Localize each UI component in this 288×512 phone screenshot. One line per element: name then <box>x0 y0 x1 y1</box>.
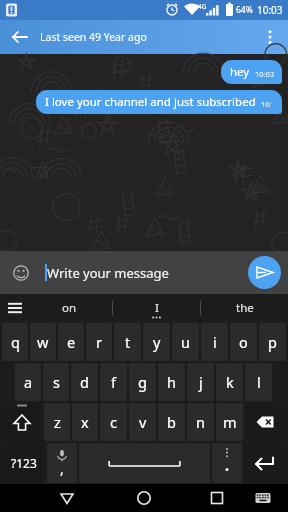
staticText: 4G <box>198 2 207 11</box>
button[interactable]: o <box>230 323 257 361</box>
button[interactable]: w <box>30 323 56 361</box>
button[interactable]: on <box>26 294 112 322</box>
button[interactable]: i <box>201 323 228 361</box>
staticText: w <box>37 332 49 352</box>
staticText: e <box>67 332 76 352</box>
button[interactable]: y <box>143 323 170 361</box>
staticText: u <box>181 332 190 352</box>
staticText: o <box>239 332 248 352</box>
button[interactable]: e <box>58 323 84 361</box>
button[interactable]: q <box>2 323 28 361</box>
staticText: b <box>167 412 176 432</box>
button[interactable]: Comma and voice input <box>47 443 77 483</box>
button[interactable]: p <box>259 323 286 361</box>
staticText: c <box>110 412 117 432</box>
staticText: , <box>60 459 64 478</box>
staticText: 10:03 <box>255 69 275 79</box>
staticText: g <box>138 372 147 392</box>
button[interactable]: Period and symbols <box>212 443 242 483</box>
button[interactable]: c <box>100 403 127 441</box>
staticText: p <box>268 332 277 352</box>
staticText: j <box>199 372 203 392</box>
staticText: n <box>196 412 205 432</box>
button[interactable]: Emoji <box>6 258 36 288</box>
staticText: 64% <box>236 4 253 16</box>
button[interactable]: z <box>44 403 70 441</box>
button[interactable]: Back <box>6 23 34 51</box>
staticText: d <box>80 372 89 392</box>
button[interactable]: I <box>113 294 200 322</box>
button[interactable]: r <box>86 323 112 361</box>
staticText: m <box>223 412 237 432</box>
button[interactable]: n <box>187 403 214 441</box>
staticText: l <box>257 372 261 392</box>
staticText: Write your message <box>47 264 169 282</box>
staticText: ?123 <box>11 455 37 471</box>
button[interactable]: Shift <box>2 403 42 441</box>
button[interactable]: hey <box>221 60 282 84</box>
button[interactable]: I love your channel and just subscribed <box>36 90 282 114</box>
button[interactable]: t <box>114 323 141 361</box>
staticText: z <box>54 412 61 432</box>
button[interactable]: Back <box>54 485 80 511</box>
button[interactable]: k <box>216 363 243 401</box>
button[interactable]: Keyboard menu <box>3 296 27 320</box>
button[interactable]: Home <box>131 485 157 511</box>
button[interactable]: Space <box>79 443 210 483</box>
button[interactable]: Enter <box>244 443 286 483</box>
button[interactable]: f <box>100 363 127 401</box>
button[interactable]: x <box>72 403 98 441</box>
staticText: h <box>167 372 176 392</box>
button[interactable]: the <box>201 294 288 322</box>
button[interactable]: Recents <box>204 485 230 511</box>
button[interactable]: Write your message <box>47 264 169 282</box>
staticText: Last seen 49 Year ago <box>40 30 147 44</box>
staticText: I <box>155 300 159 316</box>
button[interactable]: Backspace <box>245 403 286 441</box>
button[interactable]: Switch keyboard <box>250 485 276 511</box>
button[interactable]: d <box>71 363 98 401</box>
staticText: t <box>125 332 131 352</box>
button[interactable]: h <box>158 363 185 401</box>
button[interactable]: s <box>43 363 69 401</box>
staticText: 10:03 <box>261 99 275 109</box>
staticText: x <box>81 412 89 432</box>
staticText: a <box>24 372 33 392</box>
button[interactable]: b <box>158 403 185 441</box>
staticText: on <box>62 300 77 316</box>
staticText: v <box>139 412 147 432</box>
staticText: r <box>96 332 102 352</box>
button[interactable]: More options <box>256 23 284 51</box>
staticText: k <box>226 372 234 392</box>
button[interactable]: l <box>245 363 272 401</box>
staticText: 10:03 <box>257 3 283 17</box>
staticText: y <box>153 332 161 352</box>
staticText: I love your channel and just subscribed <box>45 94 256 110</box>
staticText: q <box>11 332 20 352</box>
button[interactable]: u <box>172 323 199 361</box>
staticText: i <box>213 332 217 352</box>
button[interactable]: g <box>129 363 156 401</box>
button[interactable]: v <box>129 403 156 441</box>
button[interactable]: j <box>187 363 214 401</box>
button[interactable]: m <box>216 403 243 441</box>
button[interactable]: Send <box>248 256 281 289</box>
staticText: the <box>236 300 254 316</box>
staticText: s <box>53 372 60 392</box>
staticText: f <box>111 372 116 392</box>
button[interactable]: a <box>15 363 41 401</box>
staticText: hey <box>230 64 250 80</box>
button[interactable]: ?123 <box>2 443 45 483</box>
